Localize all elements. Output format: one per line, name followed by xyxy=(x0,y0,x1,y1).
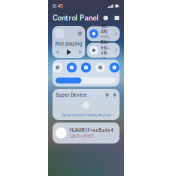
staticText: Tap to connect xyxy=(69,134,93,138)
staticText: Super Device xyxy=(55,92,86,98)
button[interactable]: Toggle xyxy=(67,62,77,72)
button[interactable]: Toggle xyxy=(95,62,105,72)
button[interactable]: Toggle xyxy=(81,62,91,72)
button[interactable]: Edit xyxy=(114,15,119,21)
staticText: Control Panel xyxy=(52,14,98,22)
button[interactable]: Toggle xyxy=(52,62,62,72)
button[interactable]: Toggle xyxy=(109,62,119,72)
button[interactable]: Settings xyxy=(103,15,108,21)
staticText: 9:41 xyxy=(52,3,62,9)
staticText: WLAN xyxy=(101,24,109,34)
staticText: HUAWEI FreeBuds 4 xyxy=(69,128,113,133)
staticText: On xyxy=(101,56,106,61)
staticText: Not playing xyxy=(55,41,82,47)
staticText: Bluetooth xyxy=(101,40,110,56)
staticText: Tap to connect nearby devices xyxy=(61,113,111,117)
staticText: Home-5G xyxy=(101,35,110,44)
